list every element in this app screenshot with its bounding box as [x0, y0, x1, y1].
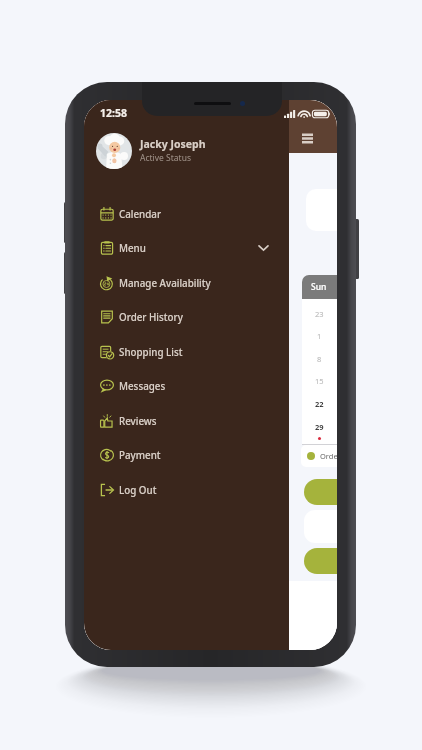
staticText: Shopping List	[119, 346, 183, 359]
staticText: Sun	[311, 281, 327, 293]
staticText: Active Status	[140, 152, 191, 164]
button[interactable]: Order History	[84, 299, 289, 334]
button[interactable]: Manage Availability	[84, 265, 289, 300]
staticText: Reviews	[119, 415, 157, 428]
staticText: 1	[317, 331, 322, 341]
button[interactable]: Reviews	[84, 403, 289, 438]
button[interactable]: Jacky Joseph	[96, 128, 289, 173]
staticText: Order History	[119, 311, 183, 324]
button[interactable]: Menu	[84, 230, 289, 265]
staticText: Order	[320, 451, 337, 461]
button[interactable]	[304, 548, 337, 574]
staticText: 23	[315, 309, 324, 319]
staticText: 29	[315, 422, 324, 432]
button[interactable]: Order	[301, 445, 337, 467]
staticText: Calendar	[119, 208, 162, 221]
staticText: 8	[317, 354, 322, 364]
button[interactable]: Messages	[84, 368, 289, 403]
button[interactable]: Calendar	[84, 196, 289, 231]
button[interactable]: Payment	[84, 437, 289, 472]
staticText: Menu	[119, 242, 146, 255]
staticText: 12:58	[100, 106, 127, 120]
staticText: 22	[315, 399, 324, 409]
staticText: Log Out	[119, 484, 157, 497]
staticText: Manage Availability	[119, 277, 211, 290]
staticText: Jacky Joseph	[140, 137, 206, 151]
button[interactable]: Open navigation menu	[302, 134, 313, 143]
staticText: 15	[315, 376, 324, 386]
staticText: Messages	[119, 380, 166, 393]
staticText: Payment	[119, 449, 161, 462]
button[interactable]: Shopping List	[84, 334, 289, 369]
button[interactable]: Log Out	[84, 472, 289, 507]
button[interactable]	[304, 479, 337, 505]
